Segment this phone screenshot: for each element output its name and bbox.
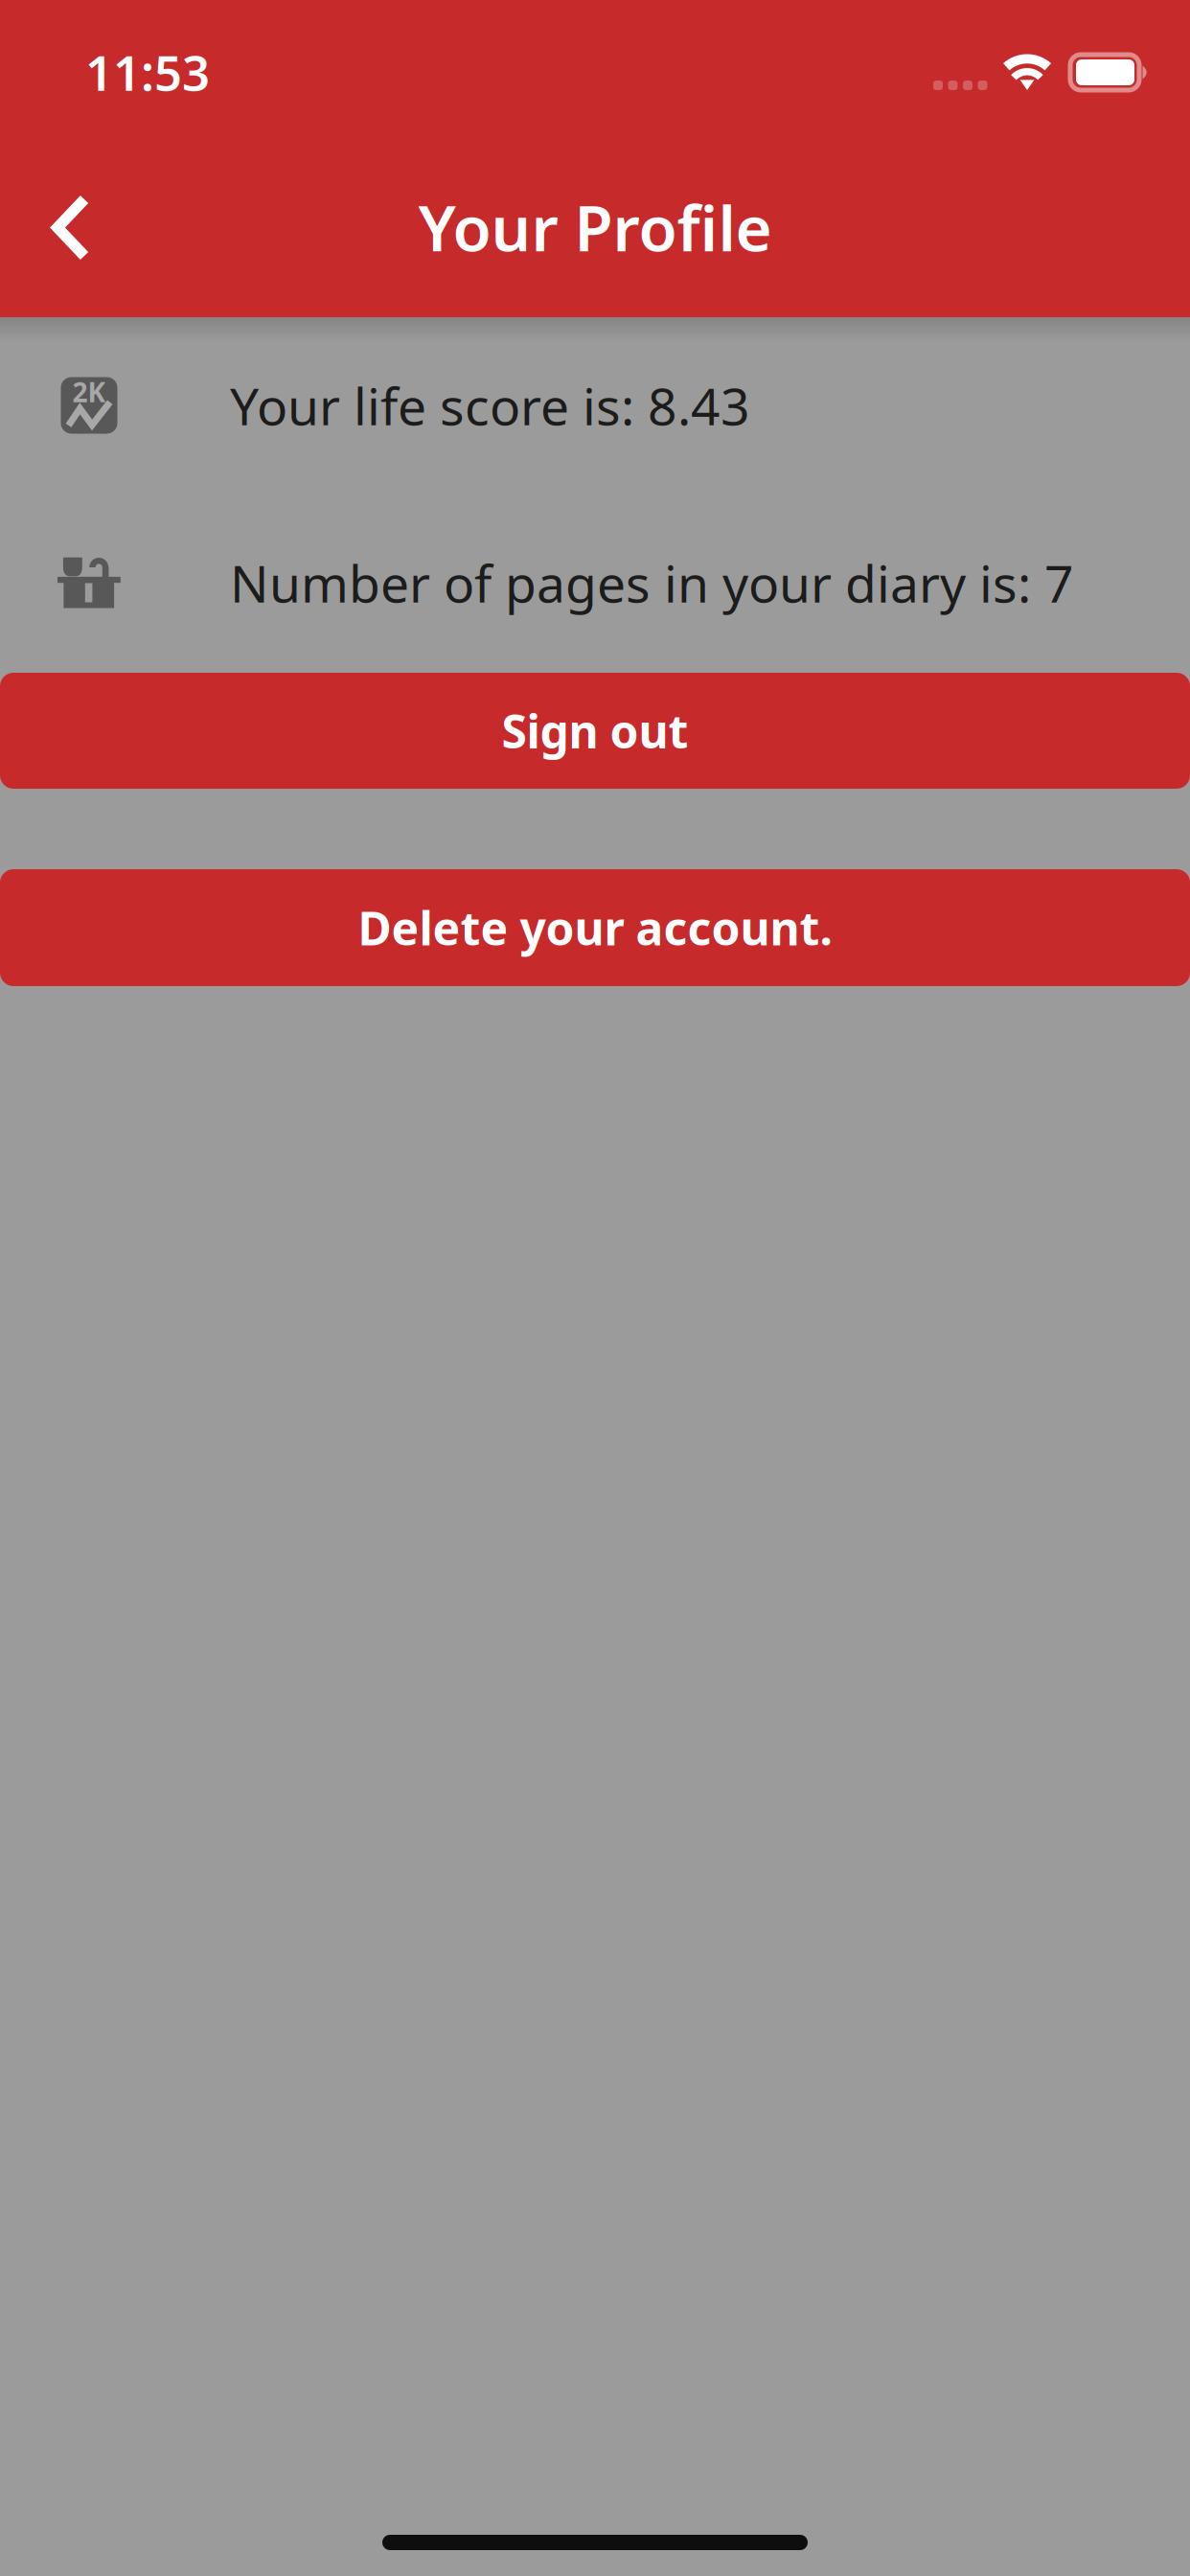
- button[interactable]: Delete your account.: [0, 869, 1190, 986]
- staticText: Sign out: [502, 700, 688, 761]
- button[interactable]: Back: [18, 175, 124, 281]
- staticText: 2K: [72, 374, 106, 410]
- staticText: 11:53: [85, 40, 210, 104]
- staticText: Your life score is: 8.43: [230, 371, 750, 439]
- staticText: Delete your account.: [358, 897, 832, 958]
- button[interactable]: Sign out: [0, 673, 1190, 789]
- staticText: Number of pages in your diary is: 7: [230, 549, 1074, 617]
- staticText: Your Profile: [418, 186, 772, 269]
